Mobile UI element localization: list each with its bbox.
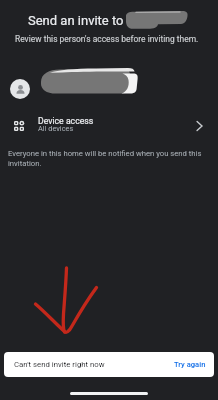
staticText: Can't send invite right now (14, 360, 105, 369)
staticText: Try again (174, 360, 206, 369)
staticText: Send an invite to (28, 13, 124, 28)
staticText: Review this person's access before invit… (15, 34, 199, 44)
button[interactable]: Device access (0, 108, 218, 144)
button[interactable]: Try again (172, 357, 208, 372)
staticText: All devices (38, 124, 74, 133)
staticText: Everyone in this home will be notified w… (8, 149, 204, 168)
staticText: Device access (38, 116, 94, 126)
